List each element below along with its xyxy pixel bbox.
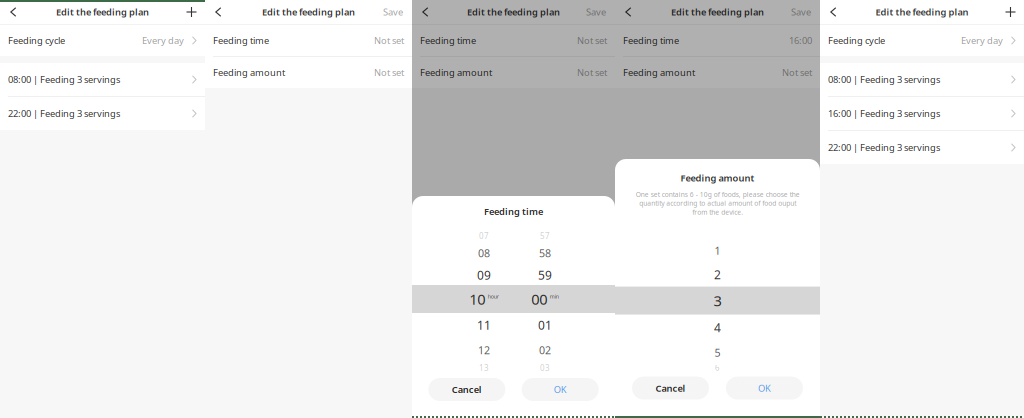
button[interactable]: Feeding amount [412, 57, 615, 88]
staticText: Feeding cycle [828, 34, 885, 47]
staticText: 03 [540, 363, 550, 373]
button[interactable]: Back [619, 0, 638, 24]
button[interactable]: Feeding amount [615, 57, 820, 88]
button[interactable]: OK [726, 377, 803, 400]
staticText: 08 [478, 246, 490, 260]
staticText: 3 [713, 291, 721, 310]
staticText: 08:00 | Feeding 3 servings [828, 73, 940, 86]
staticText: 4 [714, 320, 721, 335]
staticText: Not set [577, 66, 607, 79]
staticText: 02 [539, 343, 551, 357]
button[interactable]: Feeding amount [205, 57, 412, 88]
staticText: Not set [374, 34, 404, 47]
staticText: Cancel [655, 382, 685, 394]
staticText: 6 [715, 362, 720, 373]
button[interactable]: OK [522, 378, 599, 401]
staticText: 16:00 [789, 34, 812, 47]
staticText: Not set [577, 34, 607, 47]
staticText: hour [488, 293, 499, 300]
staticText: OK [758, 382, 771, 394]
button[interactable]: Add feeding plan [1001, 0, 1020, 24]
staticText: Save [383, 6, 403, 18]
button[interactable]: Feeding cycle [820, 25, 1024, 56]
staticText: Edit the feeding plan [875, 6, 968, 18]
staticText: Edit the feeding plan [671, 6, 764, 18]
staticText: Feeding time [484, 205, 543, 218]
button[interactable]: Save [581, 0, 611, 24]
staticText: Feeding amount [420, 66, 492, 79]
staticText: 1 [714, 243, 720, 258]
staticText: 22:00 | Feeding 3 servings [8, 107, 120, 120]
staticText: Edit the feeding plan [262, 6, 355, 18]
button[interactable]: Back [824, 0, 843, 24]
button[interactable]: 08:00 | Feeding 3 servings [0, 63, 205, 96]
button[interactable]: 22:00 | Feeding 3 servings [820, 131, 1024, 164]
staticText: Feeding time [623, 34, 679, 47]
staticText: Not set [782, 66, 812, 79]
button[interactable]: Back [209, 0, 228, 24]
staticText: Every day [142, 34, 184, 47]
staticText: Feeding time [213, 34, 269, 47]
staticText: Edit the feeding plan [56, 6, 149, 18]
staticText: Every day [961, 34, 1003, 47]
button[interactable]: Back [4, 0, 23, 24]
staticText: Save [791, 6, 811, 18]
staticText: Cancel [452, 383, 482, 396]
staticText: Feeding amount [680, 172, 754, 184]
staticText: Feeding amount [623, 66, 695, 79]
staticText: 16:00 | Feeding 3 servings [828, 107, 940, 120]
button[interactable]: Save [786, 0, 816, 24]
button[interactable]: Save [378, 0, 408, 24]
staticText: 12 [478, 343, 490, 357]
staticText: OK [554, 383, 567, 396]
staticText: One set contains 6 - 10g of foods, pleas… [635, 190, 799, 217]
staticText: min [550, 293, 559, 300]
button[interactable]: 22:00 | Feeding 3 servings [0, 97, 205, 130]
button[interactable]: 08:00 | Feeding 3 servings [820, 63, 1024, 96]
staticText: 08:00 | Feeding 3 servings [8, 73, 120, 86]
button[interactable]: Feeding time [412, 25, 615, 56]
staticText: 5 [714, 345, 720, 360]
staticText: 01 [538, 317, 552, 333]
staticText: 57 [540, 231, 550, 241]
button[interactable]: Cancel [428, 378, 505, 401]
staticText: 22:00 | Feeding 3 servings [828, 141, 940, 154]
staticText: Feeding amount [213, 66, 285, 79]
staticText: Edit the feeding plan [467, 6, 560, 18]
staticText: 58 [539, 246, 551, 260]
staticText: 07 [479, 231, 489, 241]
staticText: 11 [477, 317, 491, 333]
staticText: Not set [374, 66, 404, 79]
staticText: 2 [714, 267, 721, 282]
button[interactable]: Feeding time [205, 25, 412, 56]
button[interactable]: Back [416, 0, 435, 24]
staticText: Feeding time [420, 34, 476, 47]
staticText: 59 [538, 267, 552, 283]
staticText: 09 [477, 267, 491, 283]
button[interactable]: 16:00 | Feeding 3 servings [820, 97, 1024, 130]
button[interactable]: Feeding time [615, 25, 820, 56]
button[interactable]: Cancel [632, 377, 709, 400]
button[interactable]: Feeding cycle [0, 25, 205, 56]
staticText: Save [586, 6, 606, 18]
button[interactable]: Add feeding plan [182, 0, 201, 24]
staticText: 10 [469, 289, 485, 309]
staticText: Feeding cycle [8, 34, 65, 47]
staticText: 00 [531, 289, 547, 309]
staticText: 13 [479, 363, 489, 373]
